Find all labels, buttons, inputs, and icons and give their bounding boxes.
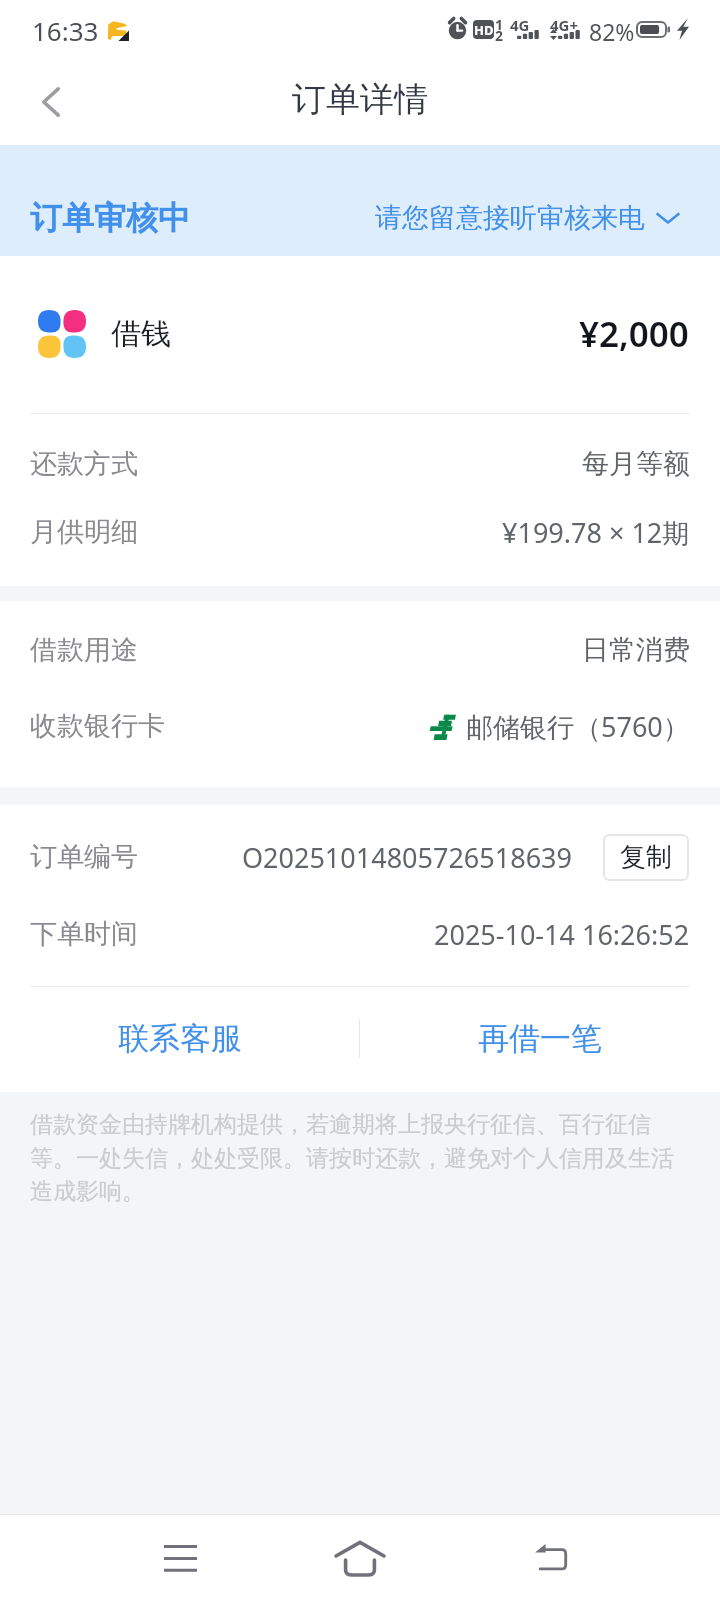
staticText: 收款银行卡 [30, 709, 165, 743]
staticText: 订单审核中 [30, 198, 190, 238]
staticText: 再借一笔 [478, 1019, 602, 1058]
staticText: 订单编号 [30, 840, 138, 874]
staticText: 1 [495, 15, 504, 34]
button[interactable]: Home [300, 1515, 420, 1600]
staticText: 2025-10-14 16:26:52 [434, 916, 690, 953]
staticText: 16:33 [32, 13, 99, 48]
button[interactable]: 联系客服 [0, 987, 359, 1092]
button[interactable]: Back [491, 1515, 611, 1600]
staticText: 借款资金由持牌机构提供，若逾期将上报央行征信、百行征信等。一处失信，处处受限。请… [30, 1110, 692, 1205]
staticText: 联系客服 [118, 1019, 242, 1058]
staticText: 下单时间 [30, 917, 138, 951]
button[interactable]: Back [12, 62, 92, 142]
staticText: 邮储银行（5760） [466, 708, 690, 745]
staticText: 请您留意接听审核来电 [375, 201, 645, 235]
button[interactable]: 复制 [603, 834, 689, 881]
staticText: O20251014805726518639 [242, 839, 572, 876]
staticText: 2 [495, 26, 504, 45]
staticText: 4G [510, 15, 530, 35]
staticText: 4G+ [550, 15, 579, 35]
staticText: 订单详情 [292, 78, 428, 121]
staticText: 月供明细 [30, 515, 138, 549]
staticText: ¥2,000 [579, 310, 689, 358]
button[interactable]: 再借一笔 [360, 987, 720, 1092]
staticText: ¥199.78 × 12期 [502, 514, 690, 551]
staticText: 82% [589, 16, 635, 47]
staticText: 借钱 [111, 315, 171, 353]
staticText: 还款方式 [30, 447, 138, 481]
staticText: 日常消费 [582, 633, 690, 667]
button[interactable]: 订单审核中 [0, 145, 720, 256]
staticText: 复制 [620, 841, 672, 874]
button[interactable]: Recent apps [120, 1515, 240, 1600]
staticText: 每月等额 [582, 447, 690, 481]
staticText: 借款用途 [30, 633, 138, 667]
staticText: HD [474, 21, 494, 39]
